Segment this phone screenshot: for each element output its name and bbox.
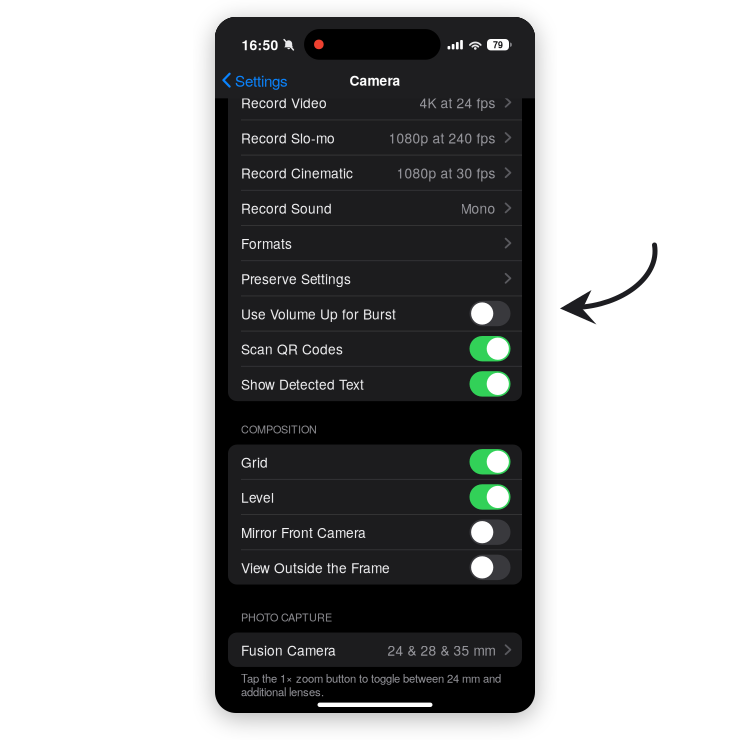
staticText: Record Video [241, 92, 327, 112]
staticText: Mirror Front Camera [241, 522, 366, 542]
staticText: Scan QR Codes [241, 339, 343, 358]
button[interactable]: Record Video [228, 85, 522, 119]
staticText: 1080p at 30 fps [396, 163, 495, 182]
staticText: Record Slo-mo [241, 128, 335, 147]
staticText: 79 [493, 38, 503, 51]
staticText: 4K at 24 fps [419, 92, 495, 112]
button[interactable]: Formats [228, 226, 522, 260]
button[interactable]: Toggle, on [469, 449, 510, 474]
staticText: PHOTO CAPTURE [241, 609, 332, 625]
button[interactable]: Record Cinematic [228, 155, 522, 190]
button[interactable]: Record Slo-mo [228, 120, 522, 155]
staticText: Show Detected Text [241, 374, 364, 394]
staticText: Camera [349, 70, 400, 90]
staticText: Mono [460, 198, 495, 218]
button[interactable]: Record Sound [228, 191, 522, 225]
staticText: Record Cinematic [241, 163, 353, 182]
button[interactable]: Toggle, on [469, 371, 510, 397]
staticText: Preserve Settings [241, 268, 351, 288]
staticText: Use Volume Up for Burst [241, 304, 396, 323]
button[interactable]: Fusion Camera [228, 632, 522, 667]
button[interactable]: Preserve Settings [228, 261, 522, 295]
staticText: View Outside the Frame [241, 558, 390, 577]
button[interactable]: Settings [215, 62, 288, 98]
staticText: Tap the 1× zoom button to toggle between… [241, 670, 501, 686]
staticText: 16:50 [241, 35, 278, 55]
button[interactable]: Toggle, off [469, 519, 510, 545]
staticText: 1080p at 240 fps [388, 128, 495, 147]
staticText: Formats [241, 233, 292, 253]
button[interactable]: Toggle, on [469, 484, 510, 510]
staticText: COMPOSITION [241, 421, 317, 437]
staticText: Grid [241, 452, 268, 472]
staticText: Settings [235, 69, 288, 91]
button[interactable]: Toggle, on [469, 336, 510, 361]
staticText: Level [241, 487, 274, 507]
staticText: Fusion Camera [241, 640, 336, 659]
staticText: 24 & 28 & 35 mm [387, 640, 495, 659]
button[interactable]: Toggle, off [469, 301, 510, 326]
button[interactable]: Toggle, off [469, 555, 510, 580]
staticText: Record Sound [241, 198, 332, 218]
staticText: additional lenses. [241, 683, 324, 699]
